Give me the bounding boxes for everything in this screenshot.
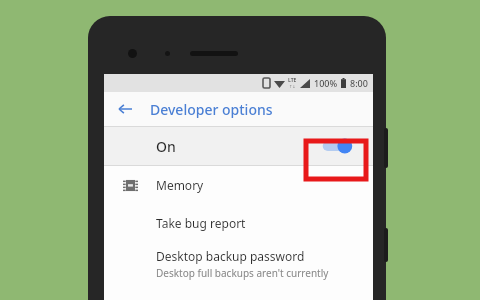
staticText: Take bug report	[156, 215, 246, 231]
staticText: Memory	[156, 177, 204, 193]
staticText: Desktop full backups aren't currently	[156, 266, 329, 280]
staticText: 100%	[314, 77, 338, 89]
staticText: Developer options	[150, 100, 273, 119]
button[interactable]: Take bug report	[104, 204, 373, 242]
button[interactable]: Desktop backup password	[104, 242, 373, 280]
staticText: LTE	[288, 77, 297, 84]
button[interactable]: Back	[113, 97, 137, 121]
staticText: ↑↓	[289, 84, 296, 89]
staticText: 8:00	[350, 77, 368, 89]
button[interactable]: Developer options toggle	[321, 134, 355, 158]
staticText: Desktop backup password	[156, 248, 305, 264]
button[interactable]: On	[104, 127, 373, 165]
button[interactable]: Memory	[104, 166, 373, 204]
staticText: On	[156, 137, 176, 156]
